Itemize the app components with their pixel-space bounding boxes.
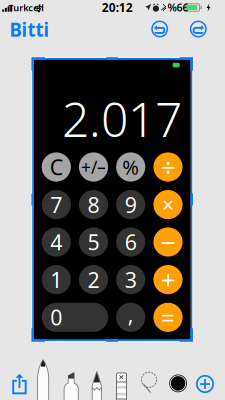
button[interactable]: 1 bbox=[42, 265, 71, 294]
staticText: 3 bbox=[125, 265, 137, 294]
button[interactable]: + bbox=[153, 265, 183, 294]
button[interactable]: Share bbox=[12, 373, 27, 394]
staticText: Turkcell bbox=[8, 1, 44, 14]
staticText: × bbox=[162, 190, 174, 219]
staticText: 20:12 bbox=[102, 0, 133, 15]
staticText: − bbox=[160, 224, 175, 260]
staticText: 9 bbox=[125, 190, 137, 219]
staticText: = bbox=[161, 301, 175, 333]
staticText: 4 bbox=[50, 228, 62, 256]
staticText: ÷ bbox=[161, 150, 175, 184]
button[interactable]: 8 bbox=[79, 190, 108, 219]
button[interactable]: Eraser bbox=[116, 372, 127, 400]
button[interactable]: Add bbox=[194, 373, 216, 395]
button[interactable]: 9 bbox=[116, 190, 145, 219]
button[interactable]: , bbox=[116, 303, 145, 332]
staticText: 0 bbox=[50, 303, 62, 331]
button[interactable]: % bbox=[116, 152, 145, 182]
button[interactable]: 7 bbox=[42, 190, 71, 219]
staticText: 6 bbox=[125, 228, 137, 256]
button[interactable]: +/– bbox=[79, 152, 108, 182]
button[interactable]: Undo bbox=[150, 19, 170, 39]
button[interactable]: Bitti bbox=[3, 12, 55, 47]
staticText: Bitti bbox=[9, 17, 49, 42]
button[interactable]: 6 bbox=[116, 227, 145, 257]
button[interactable]: Pencil bbox=[91, 371, 102, 400]
staticText: C bbox=[50, 153, 63, 181]
button[interactable]: 0 bbox=[42, 303, 108, 332]
button[interactable]: Pen bbox=[37, 359, 50, 400]
button[interactable]: 3 bbox=[116, 265, 145, 294]
button[interactable]: Lasso bbox=[140, 372, 158, 394]
staticText: + bbox=[161, 263, 175, 296]
staticText: , bbox=[128, 300, 134, 328]
staticText: 1 bbox=[50, 265, 62, 294]
button[interactable]: Redo bbox=[188, 19, 208, 39]
button[interactable]: C bbox=[42, 152, 71, 182]
staticText: 2 bbox=[87, 265, 99, 294]
button[interactable]: Color bbox=[168, 373, 188, 393]
staticText: 7 bbox=[50, 190, 62, 219]
button[interactable]: − bbox=[153, 227, 183, 257]
button[interactable]: × bbox=[153, 190, 183, 219]
button[interactable]: 4 bbox=[42, 227, 71, 257]
button[interactable]: Highlighter bbox=[63, 372, 79, 400]
staticText: 5 bbox=[87, 228, 99, 256]
button[interactable]: 5 bbox=[79, 227, 108, 257]
staticText: 8 bbox=[87, 190, 99, 219]
staticText: %66 bbox=[168, 0, 189, 14]
button[interactable]: ÷ bbox=[153, 152, 183, 182]
staticText: +/– bbox=[81, 155, 106, 178]
staticText: % bbox=[122, 154, 139, 180]
button[interactable]: 2 bbox=[79, 265, 108, 294]
button[interactable]: = bbox=[153, 303, 183, 332]
staticText: 2.017 bbox=[62, 87, 182, 150]
